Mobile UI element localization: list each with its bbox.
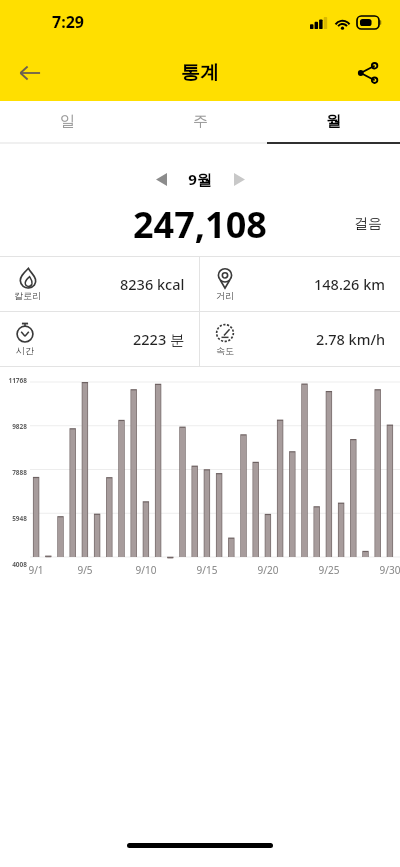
- button[interactable]: 일: [0, 101, 134, 142]
- staticText: 주: [193, 112, 208, 131]
- staticText: 2.78 km/h: [316, 329, 386, 349]
- staticText: 9월: [178, 169, 222, 189]
- button[interactable]: 칼로리: [0, 257, 199, 311]
- button[interactable]: Share: [344, 49, 392, 97]
- button[interactable]: 주: [134, 101, 267, 142]
- staticText: 7:29: [52, 11, 84, 33]
- staticText: 5948: [0, 514, 27, 523]
- button[interactable]: Previous month: [144, 162, 178, 196]
- staticText: 속도: [216, 345, 234, 356]
- staticText: 9/10: [130, 563, 162, 577]
- staticText: 걸음: [354, 215, 382, 233]
- staticText: 9/30: [374, 563, 400, 577]
- staticText: 247,108: [133, 200, 267, 248]
- button[interactable]: 시간: [0, 312, 199, 366]
- staticText: 8236 kcal: [120, 274, 185, 294]
- staticText: 거리: [216, 290, 234, 301]
- staticText: 9828: [0, 422, 27, 431]
- staticText: 2223 분: [133, 329, 185, 349]
- staticText: 4008: [0, 560, 27, 569]
- staticText: 9/1: [20, 563, 52, 577]
- staticText: 시간: [16, 345, 34, 356]
- staticText: 11768: [0, 376, 27, 385]
- staticText: 통계: [181, 61, 219, 85]
- staticText: 9/20: [252, 563, 284, 577]
- staticText: 9/15: [191, 563, 223, 577]
- staticText: 일: [60, 112, 75, 131]
- staticText: 9/25: [313, 563, 345, 577]
- staticText: 7888: [0, 468, 27, 477]
- button[interactable]: 거리: [200, 257, 400, 311]
- button[interactable]: Back: [6, 49, 54, 97]
- staticText: 칼로리: [14, 290, 41, 301]
- button[interactable]: Next month: [222, 162, 256, 196]
- staticText: 148.26 km: [314, 274, 386, 294]
- staticText: 월: [326, 112, 341, 131]
- button[interactable]: 속도: [200, 312, 400, 366]
- staticText: 9/5: [69, 563, 101, 577]
- button[interactable]: 월: [267, 101, 400, 142]
